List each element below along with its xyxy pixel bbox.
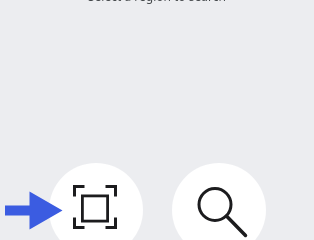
button[interactable] (49, 163, 143, 240)
staticText: Select a region to search (88, 0, 226, 4)
button[interactable] (172, 163, 266, 240)
